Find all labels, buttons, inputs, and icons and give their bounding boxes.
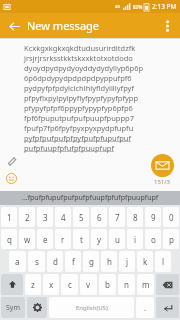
staticText: v [86,279,91,290]
staticText: 82% [133,4,143,10]
button[interactable]: e [37,229,53,249]
button[interactable]: ...fpufpfupufpufpufpfuupfpfufpfpuupfupf [22,193,159,203]
button[interactable]: Back [6,18,22,34]
staticText: d [53,256,58,267]
button[interactable]: 8 [127,207,143,227]
button[interactable]: l [155,251,171,272]
button[interactable]: Emoji [4,171,18,185]
staticText: o [151,234,156,245]
button[interactable]: Sym [1,297,25,318]
staticText: English(US) [76,304,108,312]
button[interactable]: k [137,251,153,272]
button[interactable]: b [99,274,116,295]
staticText: Sym [6,303,20,313]
button[interactable]: q [1,229,17,249]
button[interactable]: 9 [145,207,161,227]
staticText: pufpfuupfpfufpfpuupfupf [24,143,114,153]
staticText: i [134,234,137,245]
button[interactable]: u [109,229,125,249]
button[interactable]: Shift [1,274,23,295]
staticText: 9 [151,212,156,223]
staticText: t [80,234,83,245]
staticText: pydpyfpfpdylclchlhlyfldyllllyfpyf [24,83,135,93]
button[interactable]: g [83,251,99,272]
button[interactable]: . [136,297,154,318]
button[interactable]: v [80,274,97,295]
staticText: c [68,279,72,290]
staticText: 0 [169,212,174,223]
button[interactable]: Settings [27,297,47,318]
button[interactable]: 6 [91,207,107,227]
staticText: n [124,279,129,290]
staticText: . [144,302,147,313]
staticText: 151/3 [154,178,170,186]
button[interactable]: a [9,251,26,272]
staticText: pyfpfpufpufpfpyfpufpfupufpuf [24,133,132,143]
button[interactable]: 0 [163,207,179,227]
staticText: fpufp7fp6fpyfpyxpyxpydpfupfu [24,123,134,133]
staticText: h [107,256,112,267]
button[interactable]: i [127,229,143,249]
staticText: j [126,256,129,267]
staticText: w [24,234,31,245]
button[interactable]: Send [151,154,174,177]
staticText: 2 [25,212,30,223]
button[interactable]: c [61,274,78,295]
staticText: l [162,256,165,267]
button[interactable]: s [28,251,45,272]
button[interactable]: 3 [37,207,53,227]
button[interactable]: d [47,251,63,272]
button[interactable]: h [101,251,117,272]
button[interactable]: 4 [55,207,71,227]
button[interactable]: n [118,274,135,295]
staticText: New message [27,18,100,33]
staticText: pfpyflxpylpylpyflyfpypfypyfpfypp [24,93,139,103]
button[interactable]: 2 [19,207,35,227]
staticText: 4G [115,4,121,9]
button[interactable]: 5 [73,207,89,227]
button[interactable]: English(US) [49,297,134,318]
button[interactable]: 7 [109,207,125,227]
staticText: b [105,279,110,290]
button[interactable]: x [43,274,59,295]
button[interactable]: Enter [156,297,179,318]
staticText: 3 [43,212,48,223]
staticText: q [7,234,12,245]
button[interactable]: More options [158,17,176,35]
staticText: dyoydpydpydyoyddydydyllyp6p6p [24,63,144,73]
button[interactable]: w [19,229,35,249]
staticText: z [31,279,35,290]
button[interactable]: r [55,229,71,249]
staticText: 6 [97,212,102,223]
button[interactable]: f [65,251,81,272]
staticText: e [43,234,48,245]
button[interactable]: j [119,251,135,272]
button[interactable]: p [163,229,179,249]
button[interactable]: Backspace [156,274,179,295]
button[interactable]: 1 [1,207,17,227]
button[interactable]: o [145,229,161,249]
staticText: fpf6fpuputpufpufpuupfpuppp7 [24,113,134,123]
staticText: k [143,256,148,267]
staticText: p [169,234,174,245]
staticText: x [49,279,54,290]
staticText: 2:13 PM [152,2,177,11]
staticText: f [72,256,75,267]
staticText: 6p6dpdypydpdpdpdpyppufpf6 [24,73,132,83]
staticText: r [61,234,65,245]
staticText: s [35,256,39,267]
button[interactable]: Attach [4,154,19,169]
button[interactable]: z [25,274,41,295]
staticText: pfypyfpfpf6ppypfypypfyp6pfp6 [24,103,133,113]
button[interactable]: t [73,229,89,249]
staticText: Kcxkgxkgkxqkdtudusurirditdzfk [24,43,136,53]
staticText: a [15,256,20,267]
staticText: 4 [61,212,66,223]
staticText: g [89,256,94,267]
staticText: 5 [79,212,84,223]
staticText: jrsjrjrsrksstkktskxxktotxotdodo [24,53,133,63]
staticText: u [115,234,120,245]
staticText: 1 [7,212,12,223]
button[interactable]: y [91,229,107,249]
button[interactable]: m [137,274,154,295]
